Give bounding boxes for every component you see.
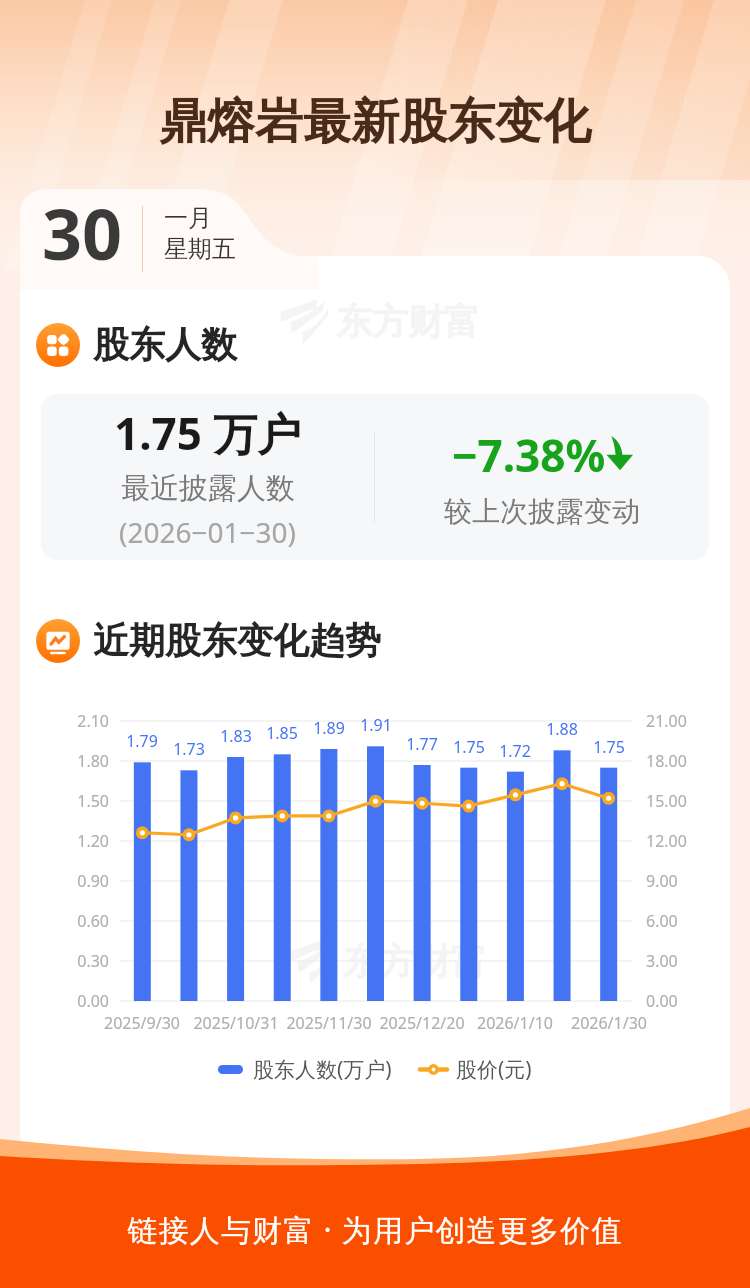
staticText: 12.00 — [646, 830, 716, 852]
staticText: 最近披露人数 — [121, 470, 295, 507]
staticText: 2025/12/20 — [362, 1012, 482, 1034]
staticText: 2025/9/30 — [82, 1012, 202, 1034]
button[interactable]: 近期股东变化趋势 — [36, 618, 730, 663]
staticText: 1.72 — [480, 740, 550, 762]
staticText: 1.88 — [527, 718, 597, 740]
staticText: 0.00 — [39, 990, 109, 1012]
staticText: 1.89 — [294, 717, 364, 739]
staticText: (2026−01−30) — [119, 513, 296, 551]
button[interactable]: 股东人数 — [36, 322, 730, 367]
other: 股东人数 — [36, 323, 80, 367]
staticText: 近期股东变化趋势 — [93, 618, 381, 663]
staticText: 9.00 — [646, 870, 716, 892]
staticText: 2026/1/30 — [549, 1012, 669, 1034]
staticText: 1.79 — [107, 730, 177, 752]
staticText: 股东人数 — [93, 322, 237, 367]
staticText: 2.10 — [39, 710, 109, 732]
staticText: 一月 — [164, 203, 212, 233]
staticText: 2026/1/10 — [455, 1012, 575, 1034]
staticText: 1.85 — [247, 722, 317, 744]
staticText: 15.00 — [646, 790, 716, 812]
staticText: 股东人数(万户) — [253, 1055, 392, 1084]
staticText: 30 — [42, 185, 123, 269]
staticText: 2025/10/31 — [176, 1012, 296, 1034]
staticText: 较上次披露变动 — [444, 494, 640, 529]
staticText: 东方财富 — [343, 939, 487, 984]
button[interactable]: 30 — [20, 189, 270, 273]
staticText: 1.50 — [39, 790, 109, 812]
staticText: 1.75 万户 — [114, 403, 302, 463]
staticText: 21.00 — [646, 710, 716, 732]
button[interactable]: 1.75 万户 — [41, 394, 709, 560]
staticText: 2025/11/30 — [269, 1012, 389, 1034]
staticText: 18.00 — [646, 750, 716, 772]
staticText: 1.80 — [39, 750, 109, 772]
staticText: 3.00 — [646, 950, 716, 972]
staticText: 0.60 — [39, 910, 109, 932]
staticText: 1.91 — [341, 714, 411, 736]
staticText: 1.77 — [387, 733, 457, 755]
staticText: 0.30 — [39, 950, 109, 972]
staticText: 6.00 — [646, 910, 716, 932]
staticText: 0.90 — [39, 870, 109, 892]
staticText: 鼎熔岩最新股东变化 — [0, 92, 750, 152]
staticText: −7.38% — [452, 425, 606, 485]
other: 近期股东变化趋势 — [36, 619, 80, 663]
staticText: 1.73 — [154, 738, 224, 760]
staticText: 1.75 — [434, 736, 504, 758]
staticText: 1.75 — [574, 736, 644, 758]
staticText: 东方财富 — [336, 299, 480, 344]
staticText: 股价(元) — [456, 1055, 532, 1084]
staticText: 1.20 — [39, 830, 109, 852]
staticText: 0.00 — [646, 990, 716, 1012]
staticText: 链接人与财富 · 为用户创造更多价值 — [0, 1209, 750, 1250]
staticText: 星期五 — [164, 234, 236, 264]
staticText: 1.83 — [201, 725, 271, 747]
